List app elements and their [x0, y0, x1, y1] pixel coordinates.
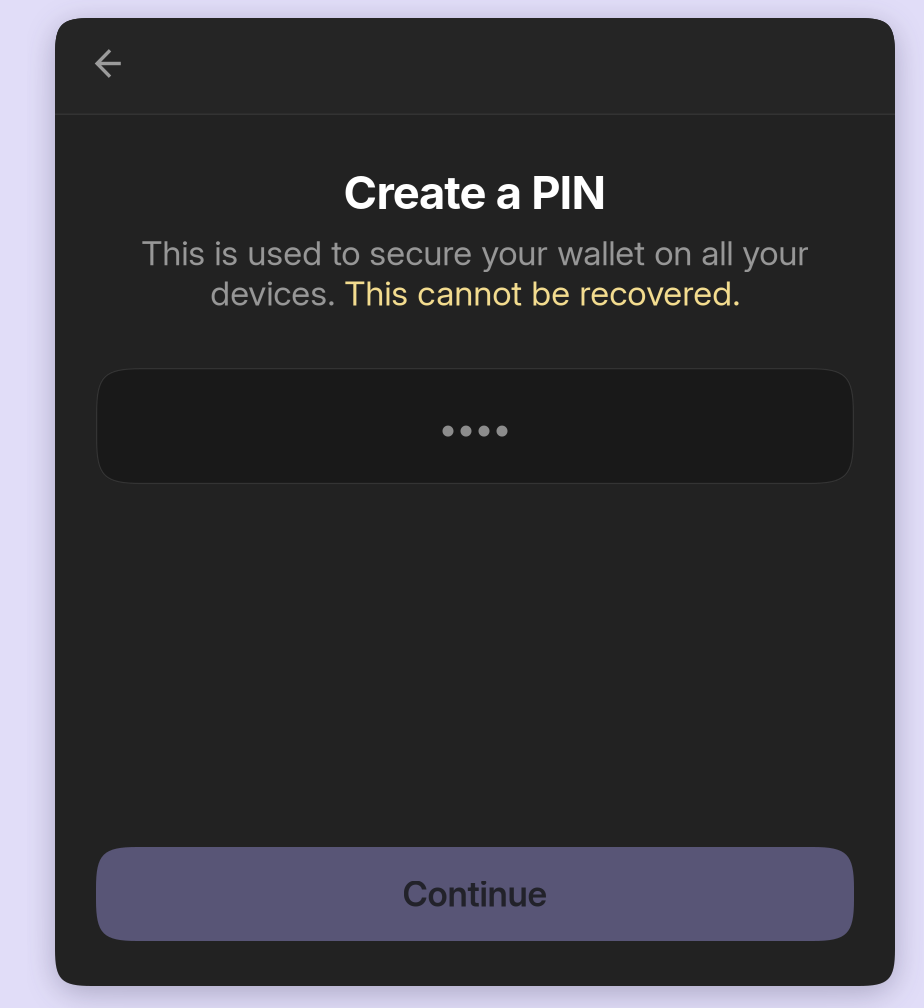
staticText: Continue: [402, 873, 547, 915]
staticText: Create a PIN: [343, 165, 607, 220]
button[interactable]: Continue: [96, 847, 854, 941]
staticText: This is used to secure your wallet on al…: [141, 233, 809, 313]
button[interactable]: PIN: [96, 368, 854, 484]
button[interactable]: Back: [83, 40, 135, 92]
